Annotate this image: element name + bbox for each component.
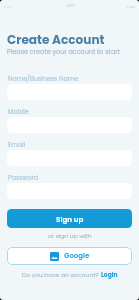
button[interactable]: Sign up <box>7 209 132 228</box>
staticText: Mobile <box>8 107 29 116</box>
staticText: Password <box>8 173 39 182</box>
other: Sign up with Google <box>50 252 59 261</box>
staticText: or sign up with <box>48 232 92 240</box>
staticText: Google <box>64 251 90 261</box>
button[interactable]: Login <box>101 271 118 279</box>
staticText: Sign up <box>56 214 84 224</box>
staticText: Login <box>101 271 118 279</box>
staticText: Email <box>8 140 26 149</box>
button[interactable]: Sign up with Google <box>7 247 132 265</box>
staticText: Name/Business Name <box>8 74 79 83</box>
staticText: Do you have an account? <box>22 271 101 279</box>
staticText: Create Account <box>7 31 105 48</box>
staticText: Please create your account to start <box>7 47 120 56</box>
